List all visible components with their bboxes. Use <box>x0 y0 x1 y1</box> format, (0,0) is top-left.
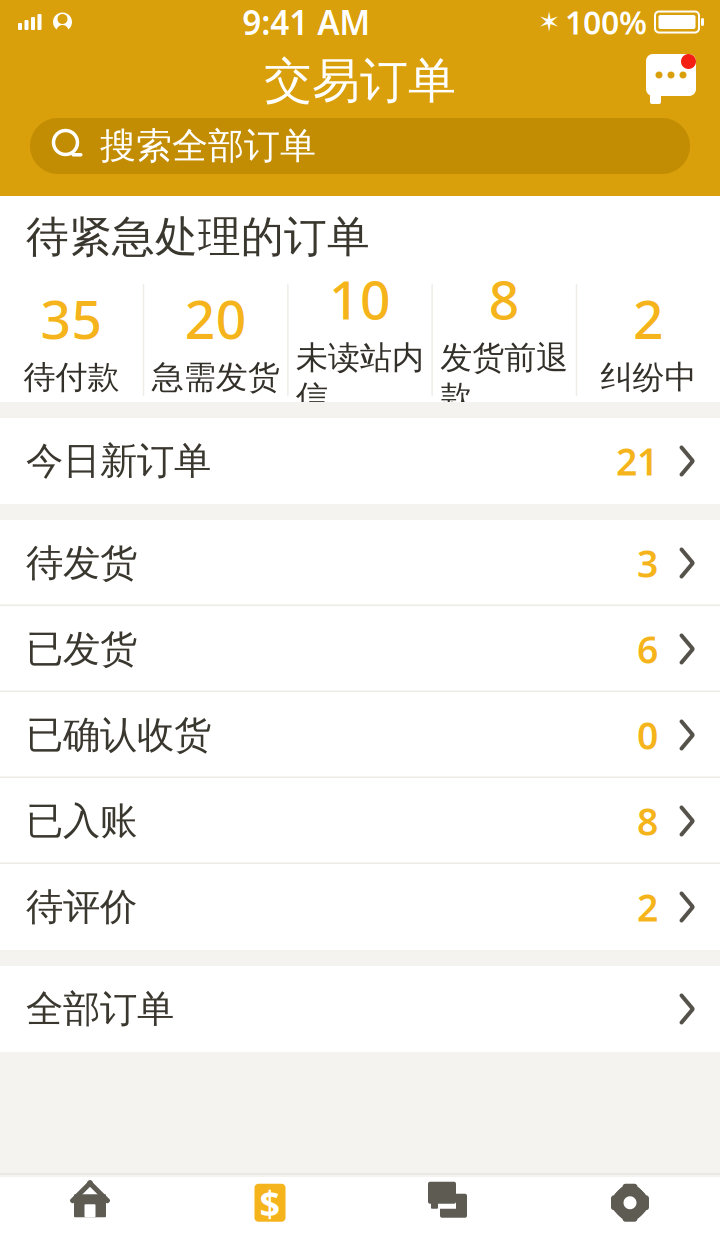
staticText: 0 <box>637 710 658 760</box>
button[interactable]: 35 <box>0 278 143 402</box>
button[interactable]: 待评价 <box>0 864 720 950</box>
button[interactable]: Home <box>0 1182 180 1224</box>
staticText: 2 <box>633 283 664 354</box>
staticText: 3 <box>637 538 658 588</box>
staticText: 21 <box>616 436 658 486</box>
staticText: 待评价 <box>26 884 137 930</box>
button[interactable]: 已发货 <box>0 606 720 692</box>
button[interactable]: 10 <box>289 278 431 402</box>
staticText: ✶ <box>538 7 560 37</box>
staticText: 待付款 <box>23 358 119 397</box>
button[interactable]: 2 <box>577 278 720 402</box>
staticText: 已发货 <box>26 626 137 672</box>
button[interactable]: Orders <box>180 1182 360 1224</box>
staticText: 全部订单 <box>26 986 174 1032</box>
button[interactable]: 待发货 <box>0 520 720 606</box>
staticText: 35 <box>40 283 102 354</box>
staticText: 8 <box>489 263 520 334</box>
button[interactable]: 8 <box>433 278 576 402</box>
staticText: 待发货 <box>26 540 137 586</box>
staticText: 100% <box>565 1 647 43</box>
staticText: 发货前退款 <box>440 338 568 417</box>
button[interactable]: 已入账 <box>0 778 720 864</box>
button[interactable]: 今日新订单 <box>0 418 720 504</box>
button[interactable]: 20 <box>144 278 287 402</box>
staticText: 20 <box>185 283 247 354</box>
staticText: 纠纷中 <box>601 358 697 397</box>
staticText: 急需发货 <box>152 358 280 397</box>
staticText: $ <box>259 1179 280 1227</box>
staticText: 9:41 AM <box>242 0 370 44</box>
staticText: 已入账 <box>26 798 137 844</box>
staticText: 交易订单 <box>264 51 456 110</box>
staticText: 6 <box>637 624 658 674</box>
button[interactable]: Messages <box>360 1182 540 1224</box>
button[interactable]: 全部订单 <box>0 966 720 1052</box>
button[interactable]: Settings <box>540 1182 720 1224</box>
staticText: 今日新订单 <box>26 438 211 484</box>
staticText: 未读站内信 <box>296 338 424 417</box>
button[interactable]: 已确认收货 <box>0 692 720 778</box>
staticText: 搜索全部订单 <box>100 124 316 168</box>
staticText: 已确认收货 <box>26 712 211 758</box>
staticText: 待紧急处理的订单 <box>26 211 370 263</box>
button[interactable]: 搜索全部订单 <box>30 118 690 174</box>
staticText: 2 <box>637 882 658 932</box>
button[interactable]: Messages <box>640 54 696 108</box>
staticText: 10 <box>329 263 391 334</box>
staticText: 8 <box>637 796 658 846</box>
